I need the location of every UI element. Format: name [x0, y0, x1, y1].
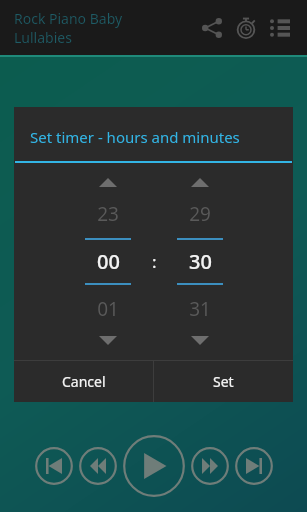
staticText: Set: [213, 372, 234, 391]
button[interactable]: Play: [123, 435, 185, 497]
staticText: 23: [97, 201, 119, 227]
button[interactable]: Fast forward: [191, 447, 229, 485]
staticText: Cancel: [62, 372, 106, 391]
button[interactable]: Rewind: [79, 447, 117, 485]
staticText: Set timer - hours and minutes: [30, 127, 240, 147]
button[interactable]: Cancel: [14, 361, 153, 402]
button[interactable]: Next: [235, 447, 273, 485]
staticText: 29: [189, 201, 211, 227]
staticText: Rock Piano Baby Lullabies: [14, 9, 123, 47]
button[interactable]: Playlist: [263, 11, 297, 45]
button[interactable]: 29: [168, 178, 232, 345]
staticText: 30: [189, 248, 212, 275]
staticText: :: [152, 250, 157, 273]
button[interactable]: Set: [154, 361, 293, 402]
button[interactable]: Previous: [35, 447, 73, 485]
staticText: 01: [97, 296, 119, 322]
button[interactable]: 23: [76, 178, 140, 345]
staticText: 31: [189, 296, 211, 322]
button[interactable]: Share: [195, 11, 229, 45]
button[interactable]: Sleep timer: [229, 11, 263, 45]
staticText: 00: [97, 248, 120, 275]
